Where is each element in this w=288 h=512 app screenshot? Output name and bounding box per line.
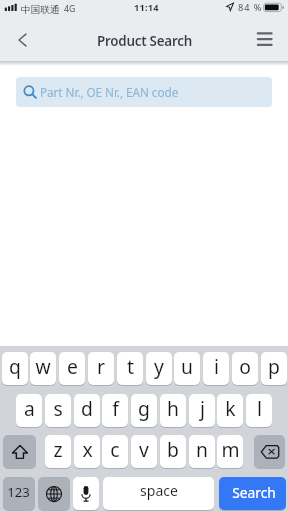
staticText: x bbox=[82, 436, 93, 462]
staticText: a bbox=[24, 395, 35, 421]
button[interactable]: x bbox=[74, 435, 100, 468]
staticText: z bbox=[53, 436, 63, 462]
button[interactable]: q bbox=[2, 352, 28, 385]
button[interactable]: y bbox=[146, 352, 172, 385]
button[interactable]: h bbox=[160, 394, 186, 427]
staticText: 4G bbox=[64, 3, 76, 15]
staticText: v bbox=[139, 436, 149, 462]
staticText: g bbox=[138, 395, 150, 421]
staticText: Part Nr., OE Nr., EAN code bbox=[40, 84, 179, 100]
button[interactable]: 123 bbox=[3, 477, 35, 510]
button[interactable] bbox=[38, 477, 70, 510]
staticText: 11:14 bbox=[134, 1, 159, 14]
staticText: w bbox=[35, 353, 51, 379]
staticText: f bbox=[112, 395, 119, 421]
staticText: o bbox=[239, 353, 251, 379]
staticText: b bbox=[167, 436, 179, 462]
button[interactable]: Menu bbox=[244, 20, 288, 61]
button[interactable]: g bbox=[131, 394, 157, 427]
button[interactable]: u bbox=[174, 352, 200, 385]
staticText: Product Search bbox=[97, 32, 192, 50]
button[interactable]: a bbox=[16, 394, 42, 427]
button[interactable]: t bbox=[117, 352, 143, 385]
button[interactable]: i bbox=[203, 352, 229, 385]
button[interactable]: w bbox=[30, 352, 56, 385]
button[interactable] bbox=[254, 435, 285, 468]
button[interactable]: Back bbox=[0, 20, 44, 61]
staticText: s bbox=[53, 395, 63, 421]
staticText: m bbox=[221, 436, 240, 462]
staticText: c bbox=[110, 436, 120, 462]
button[interactable]: Part Nr., OE Nr., EAN code bbox=[16, 77, 272, 107]
staticText: l bbox=[257, 395, 262, 421]
staticText: n bbox=[196, 436, 208, 462]
button[interactable]: m bbox=[217, 435, 243, 468]
button[interactable]: l bbox=[246, 394, 272, 427]
staticText: e bbox=[67, 353, 78, 379]
staticText: 中国联通 bbox=[21, 4, 60, 16]
button[interactable]: j bbox=[189, 394, 215, 427]
button[interactable]: v bbox=[131, 435, 157, 468]
button[interactable]: s bbox=[45, 394, 71, 427]
staticText: space bbox=[140, 481, 178, 500]
staticText: Search bbox=[232, 483, 276, 502]
staticText: j bbox=[200, 395, 205, 421]
button[interactable]: c bbox=[102, 435, 128, 468]
staticText: d bbox=[81, 395, 93, 421]
staticText: y bbox=[154, 353, 164, 379]
staticText: k bbox=[225, 395, 236, 421]
button[interactable]: e bbox=[59, 352, 85, 385]
staticText: q bbox=[9, 353, 21, 379]
staticText: 84 % bbox=[238, 1, 263, 14]
button[interactable]: z bbox=[45, 435, 71, 468]
staticText: t bbox=[127, 353, 134, 379]
button[interactable] bbox=[3, 435, 36, 468]
button[interactable] bbox=[73, 477, 99, 510]
button[interactable]: d bbox=[74, 394, 100, 427]
button[interactable]: n bbox=[189, 435, 215, 468]
button[interactable]: b bbox=[160, 435, 186, 468]
staticText: h bbox=[167, 395, 179, 421]
button[interactable]: r bbox=[88, 352, 114, 385]
staticText: u bbox=[181, 353, 193, 379]
staticText: p bbox=[268, 353, 280, 379]
button[interactable]: p bbox=[261, 352, 287, 385]
staticText: r bbox=[97, 353, 105, 379]
button[interactable]: o bbox=[232, 352, 258, 385]
button[interactable]: Search bbox=[219, 477, 286, 510]
button[interactable]: f bbox=[102, 394, 128, 427]
staticText: 123 bbox=[7, 483, 30, 501]
staticText: i bbox=[214, 353, 219, 379]
button[interactable]: k bbox=[217, 394, 243, 427]
button[interactable]: space bbox=[103, 477, 214, 510]
